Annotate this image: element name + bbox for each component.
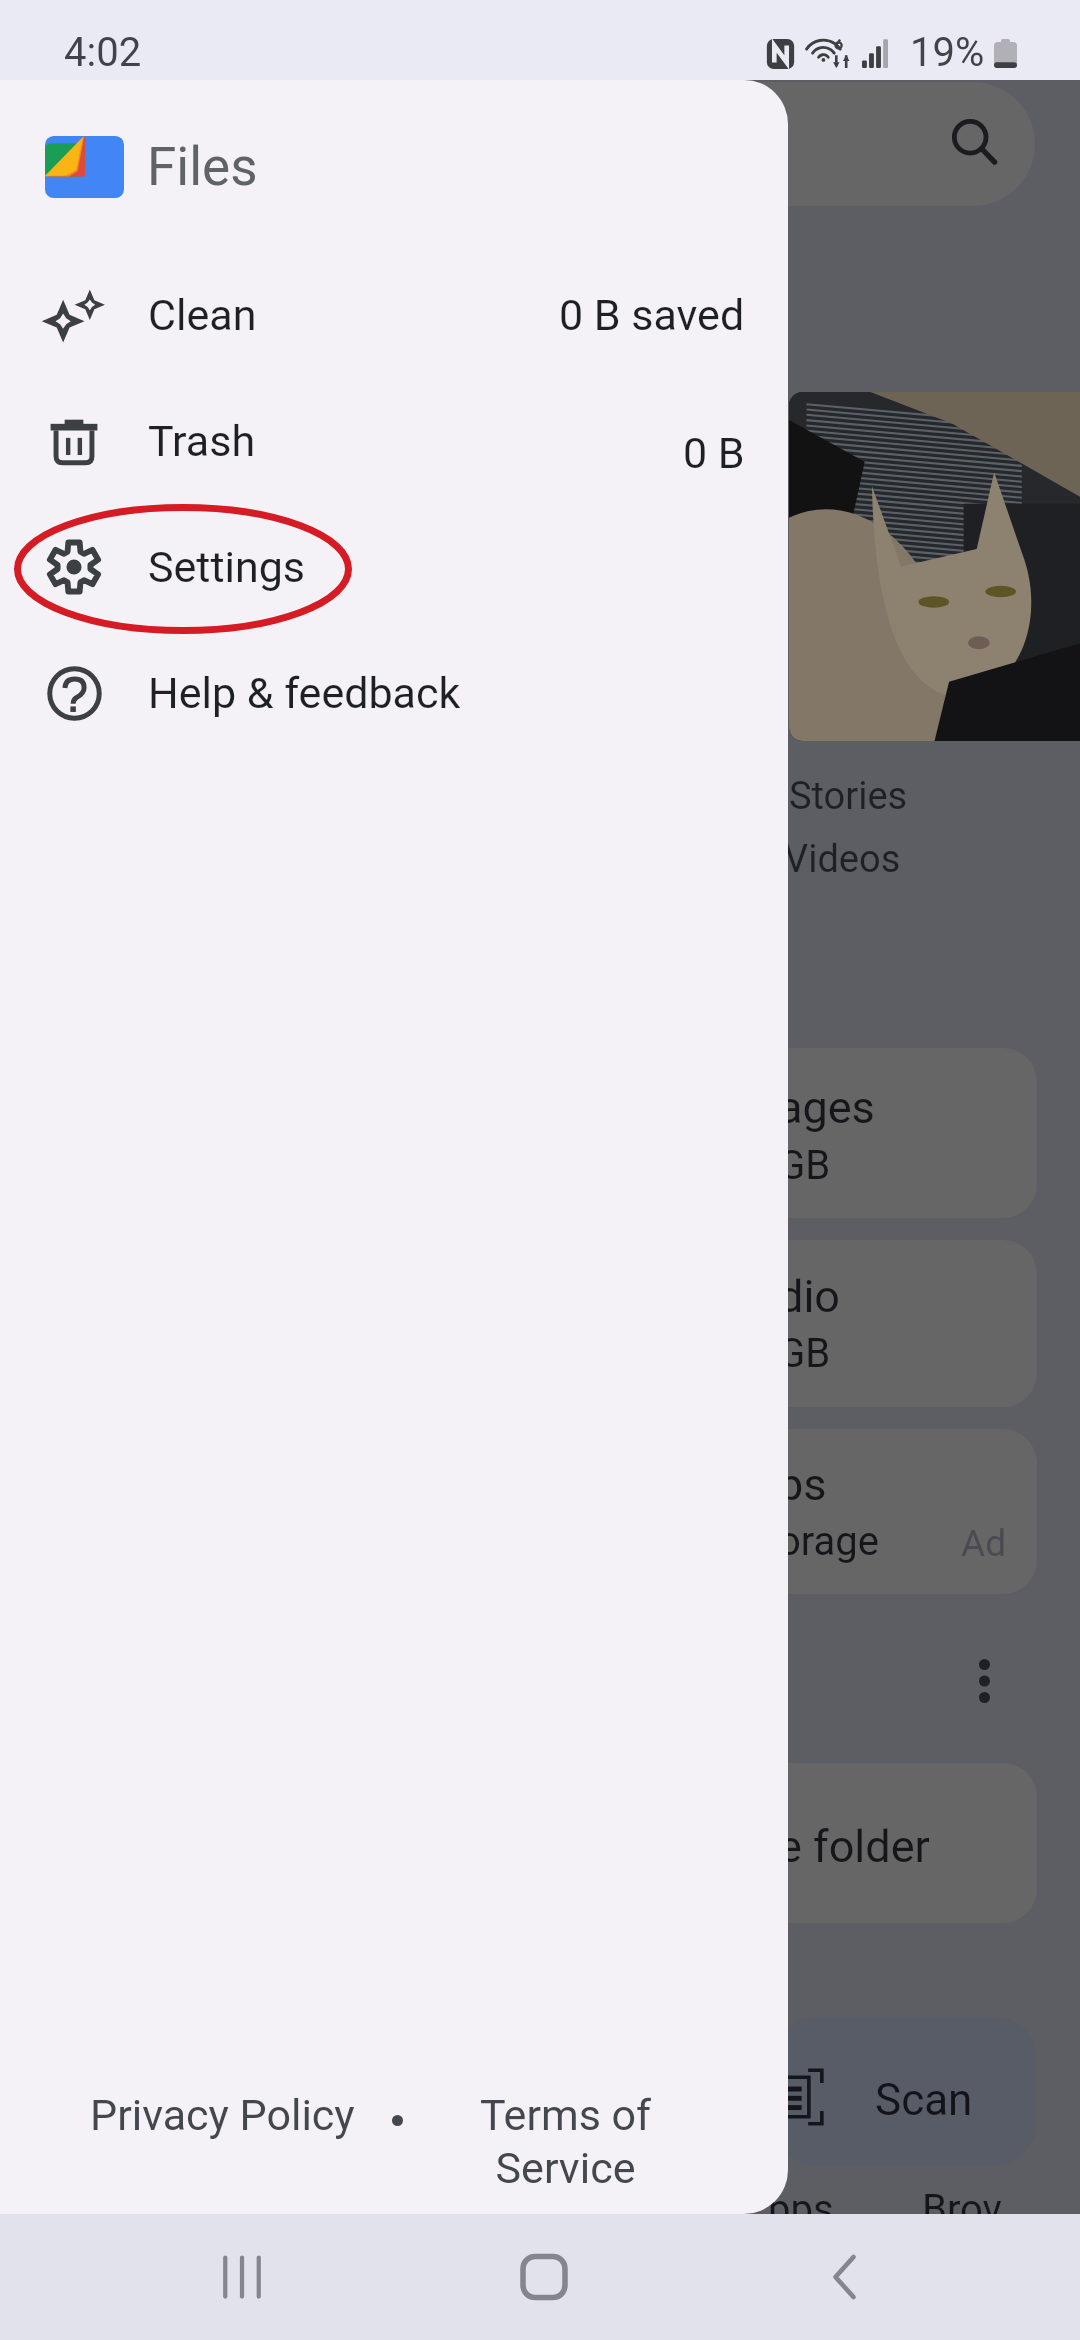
button[interactable] <box>760 1048 1037 1218</box>
staticText: Trash <box>148 416 256 466</box>
staticText: Files <box>147 136 258 198</box>
staticText: 0 B <box>683 428 745 478</box>
staticText: Clean <box>148 290 257 340</box>
staticText: Videos <box>784 837 901 882</box>
button[interactable]: Files <box>45 136 262 198</box>
button[interactable]: Home <box>496 2229 592 2325</box>
staticText: GB <box>778 1330 831 1377</box>
button[interactable]: Back <box>799 2229 895 2325</box>
staticText: Brov <box>922 2186 1002 2233</box>
button[interactable]: Privacy Policy <box>90 2090 355 2140</box>
button[interactable]: Recents <box>194 2229 290 2325</box>
staticText: 0 B saved <box>559 290 745 340</box>
button[interactable]: Clean <box>0 252 788 378</box>
button[interactable] <box>760 1429 1037 1594</box>
button[interactable]: Trash <box>0 378 788 504</box>
staticText: Stories <box>789 774 908 819</box>
staticText: dio <box>778 1270 840 1323</box>
button[interactable]: Search <box>56 82 1035 206</box>
staticText: Ad <box>961 1522 1007 1565</box>
button[interactable]: Help & feedback <box>0 630 788 756</box>
staticText: e folder <box>778 1820 930 1873</box>
staticText: 4:02 <box>64 29 142 76</box>
staticText: 19% <box>910 29 985 76</box>
staticText: Help & feedback <box>148 668 461 718</box>
staticText: Scan <box>875 2074 973 2126</box>
button[interactable] <box>760 1763 1037 1923</box>
staticText: pps <box>768 2186 834 2233</box>
button[interactable] <box>760 1240 1037 1407</box>
staticText: Settings <box>148 542 306 592</box>
button[interactable]: Terms of Service <box>480 2090 651 2193</box>
button[interactable]: More options <box>955 1635 1013 1727</box>
button[interactable]: Settings <box>0 504 788 630</box>
staticText: ps <box>778 1458 827 1511</box>
staticText: GB <box>778 1142 831 1189</box>
staticText: ages <box>778 1081 875 1134</box>
staticText: orage <box>778 1518 880 1565</box>
